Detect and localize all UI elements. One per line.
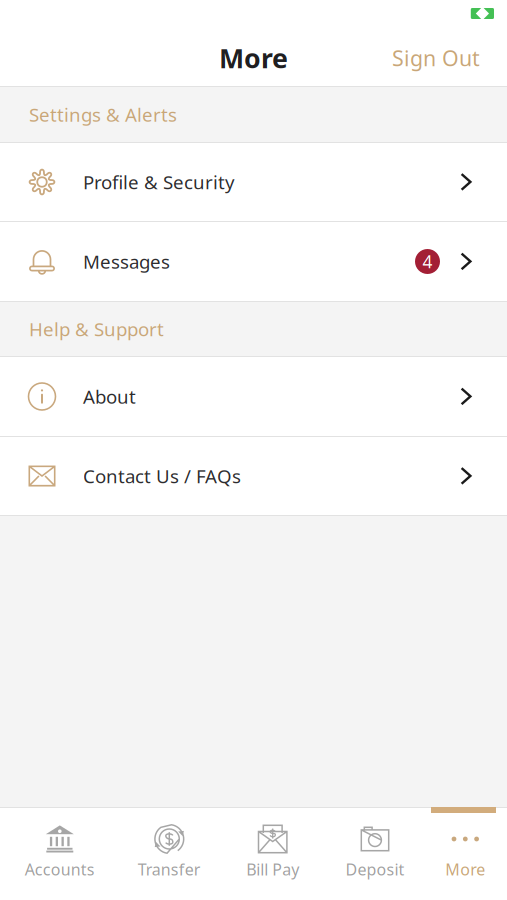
button[interactable]: Messages — [0, 222, 507, 301]
staticText: Settings & Alerts — [29, 102, 177, 127]
button[interactable]: Accounts — [0, 808, 120, 900]
button[interactable]: Deposit — [326, 808, 424, 900]
staticText: 4 — [422, 250, 432, 273]
staticText: Messages — [83, 249, 170, 274]
button[interactable]: More — [424, 808, 507, 900]
staticText: Contact Us / FAQs — [83, 464, 241, 488]
button[interactable]: Sign Out — [376, 35, 507, 81]
staticText: Profile & Security — [83, 170, 235, 194]
button[interactable]: About — [0, 357, 507, 436]
staticText: Accounts — [25, 859, 95, 880]
staticText: Sign Out — [392, 44, 480, 72]
staticText: More — [445, 859, 485, 880]
button[interactable]: Profile & Security — [0, 143, 507, 221]
staticText: Bill Pay — [246, 859, 299, 880]
button[interactable]: Bill Pay — [219, 808, 326, 900]
staticText: Transfer — [138, 859, 201, 880]
button[interactable]: Transfer — [120, 808, 219, 900]
staticText: More — [219, 40, 288, 76]
button[interactable]: Contact Us / FAQs — [0, 437, 507, 515]
staticText: Deposit — [345, 859, 404, 880]
staticText: About — [83, 384, 136, 409]
staticText: Help & Support — [29, 317, 164, 341]
